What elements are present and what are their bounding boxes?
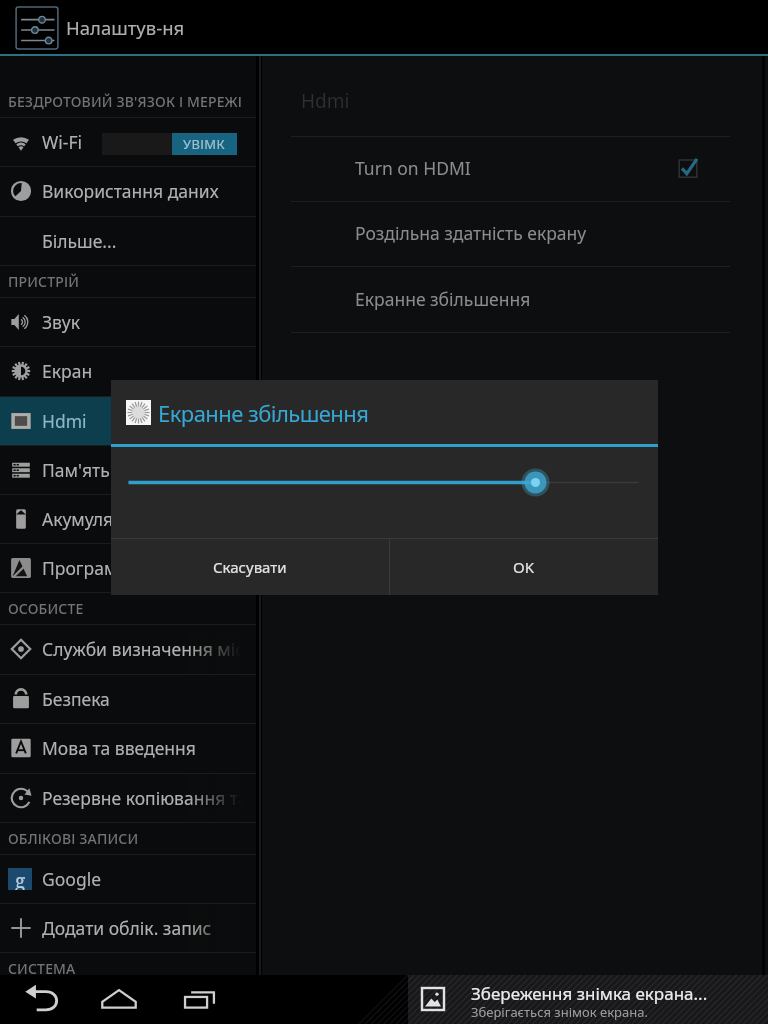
staticText: g <box>15 868 26 890</box>
staticText: ОСОБИСТЕ <box>8 599 84 618</box>
staticText: Служби визначення місцезнаходження <box>42 637 256 661</box>
staticText: Екран <box>42 359 93 383</box>
button[interactable]: Мова та введення <box>0 724 256 773</box>
staticText: Wi-Fi <box>42 130 83 154</box>
button[interactable]: Wi-Fi <box>0 118 256 166</box>
staticText: Більше... <box>42 229 117 253</box>
button[interactable]: Використання даних <box>0 167 256 216</box>
button[interactable]: Settings <box>15 6 59 50</box>
staticText: УВІМК <box>183 135 226 153</box>
staticText: Резервне копіювання та відновлення <box>42 786 256 810</box>
button[interactable]: Turn on HDMI <box>291 136 730 201</box>
button[interactable]: OK <box>390 539 658 595</box>
button[interactable]: Екранне збільшення <box>291 266 730 332</box>
button[interactable]: Більше... <box>0 217 256 265</box>
button[interactable]: Back <box>0 975 84 1024</box>
button[interactable]: Звук <box>0 298 256 346</box>
staticText: Hdmi <box>301 88 350 114</box>
staticText: Turn on HDMI <box>355 156 471 180</box>
staticText: OK <box>513 557 535 577</box>
staticText: Google <box>42 867 102 891</box>
button[interactable]: Програми <box>0 544 256 592</box>
staticText: Безпека <box>42 687 110 711</box>
staticText: Екранне збільшення <box>158 398 369 428</box>
button[interactable]: УВІМК <box>102 133 237 155</box>
staticText: ОБЛІКОВІ ЗАПИСИ <box>8 829 139 848</box>
staticText: Зберігається знімок екрана. <box>471 1003 648 1021</box>
button[interactable]: Recent apps <box>159 975 243 1024</box>
button[interactable]: Hdmi <box>0 397 256 445</box>
button[interactable]: Служби визначення місцезнаходження <box>0 625 256 674</box>
button[interactable]: g <box>0 855 256 903</box>
staticText: Використання даних <box>42 179 219 203</box>
button[interactable]: Скасувати <box>111 539 389 595</box>
staticText: Програми <box>42 556 129 580</box>
button[interactable]: Акумулятор <box>0 495 256 543</box>
staticText: Hdmi <box>42 409 87 433</box>
button[interactable]: Home <box>77 975 161 1024</box>
staticText: БЕЗДРОТОВИЙ ЗВ'ЯЗОК І МЕРЕЖІ <box>8 92 243 111</box>
staticText: Екранне збільшення <box>355 287 531 311</box>
staticText: Роздільна здатність екрану <box>355 221 587 245</box>
staticText: Звук <box>42 310 80 334</box>
staticText: Збереження знімка екрана... <box>471 982 708 1005</box>
button[interactable]: Роздільна здатність екрану <box>291 201 730 266</box>
button[interactable]: Резервне копіювання та відновлення <box>0 774 256 822</box>
button[interactable]: Екран <box>0 347 256 396</box>
staticText: СИСТЕМА <box>8 959 76 975</box>
button[interactable]: Збереження знімка екрана... <box>408 975 768 1024</box>
staticText: Акумулятор <box>42 507 143 531</box>
staticText: Додати облік. запис <box>42 916 212 940</box>
staticText: Скасувати <box>213 557 287 577</box>
staticText: Пам'ять <box>42 458 110 482</box>
staticText: Мова та введення <box>42 736 196 760</box>
staticText: Налаштув-ня <box>66 15 185 40</box>
staticText: ПРИСТРІЙ <box>8 272 80 291</box>
button[interactable]: Додати облік. запис <box>0 904 256 952</box>
button[interactable]: Безпека <box>0 675 256 723</box>
button[interactable]: Пам'ять <box>0 446 256 494</box>
